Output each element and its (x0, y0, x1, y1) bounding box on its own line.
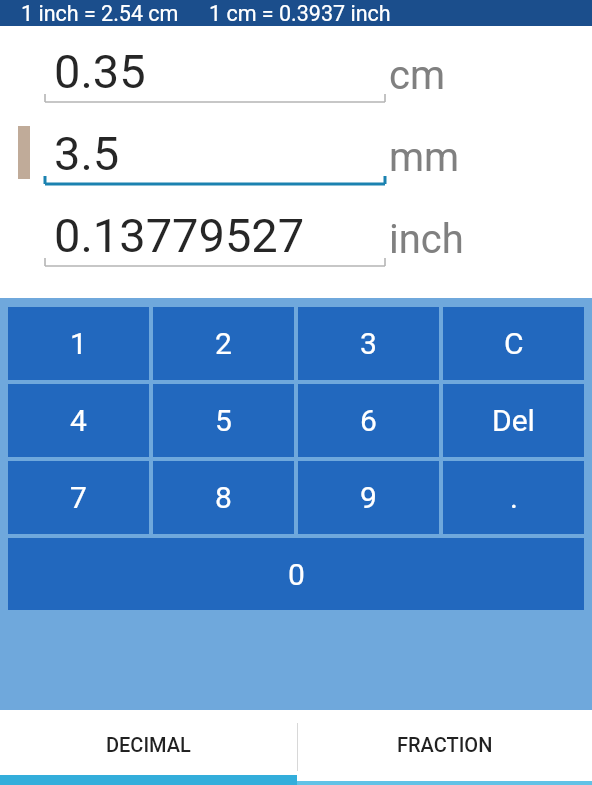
staticText: 1 cm = 0.3937 inch (209, 1, 391, 26)
staticText: 7 (70, 480, 87, 515)
staticText: 3 (360, 326, 377, 361)
staticText: 5 (215, 403, 232, 438)
staticText: 3.5 (54, 126, 120, 181)
button[interactable]: C (443, 307, 584, 380)
staticText: FRACTION (397, 733, 493, 756)
staticText: 4 (70, 403, 87, 438)
staticText: cm (389, 52, 446, 99)
button[interactable]: 2 (153, 307, 294, 380)
staticText: Del (492, 403, 535, 438)
button[interactable]: 0 (8, 538, 584, 610)
button[interactable]: FRACTION (297, 710, 592, 785)
staticText: inch (389, 216, 464, 263)
staticText: . (510, 480, 518, 515)
staticText: 1 (70, 326, 87, 361)
staticText: 6 (360, 403, 377, 438)
button[interactable]: 6 (298, 384, 439, 457)
button[interactable]: 3 (298, 307, 439, 380)
button[interactable]: Del (443, 384, 584, 457)
button[interactable]: 8 (153, 461, 294, 534)
staticText: mm (389, 134, 460, 181)
button[interactable]: 9 (298, 461, 439, 534)
button[interactable]: 5 (153, 384, 294, 457)
staticText: 2 (215, 326, 232, 361)
staticText: 0.13779527 (54, 208, 305, 263)
button[interactable]: 1 (8, 307, 149, 380)
button[interactable]: 4 (8, 384, 149, 457)
staticText: 8 (215, 480, 232, 515)
staticText: DECIMAL (106, 733, 191, 756)
button[interactable]: DECIMAL (0, 710, 297, 785)
button[interactable]: . (443, 461, 584, 534)
staticText: C (504, 326, 524, 361)
staticText: 9 (360, 480, 377, 515)
staticText: 0.35 (54, 44, 146, 99)
staticText: 1 inch = 2.54 cm (21, 1, 179, 26)
button[interactable]: 7 (8, 461, 149, 534)
staticText: 0 (288, 557, 305, 592)
